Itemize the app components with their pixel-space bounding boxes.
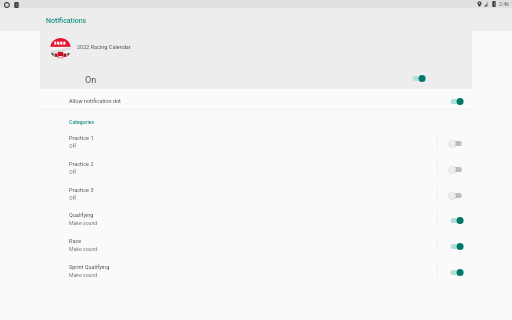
staticText: Notifications xyxy=(46,17,87,25)
button[interactable]: Allow notification dot xyxy=(40,92,472,110)
button[interactable]: Practice 3, off xyxy=(447,188,467,203)
button[interactable]: Practice 2 xyxy=(40,158,472,183)
staticText: Off xyxy=(69,169,77,175)
staticText: Practice 2 xyxy=(69,161,94,167)
other: Do not disturb xyxy=(4,2,10,8)
button[interactable]: Race xyxy=(40,235,472,260)
staticText: Allow notification dot xyxy=(69,98,121,104)
button[interactable]: Sprint Qualifying xyxy=(40,261,472,286)
staticText: Make sound xyxy=(69,246,98,252)
button[interactable]: Race, on xyxy=(447,239,467,254)
staticText: On xyxy=(85,75,97,86)
button[interactable]: Qualifying, on xyxy=(447,213,467,228)
staticText: 2:46 xyxy=(499,1,510,7)
other: Battery xyxy=(492,1,496,7)
staticText: Categories xyxy=(69,119,95,125)
staticText: Sprint Qualifying xyxy=(69,264,110,270)
staticText: Practice 3 xyxy=(69,187,94,193)
staticText: Race xyxy=(69,238,82,244)
staticText: Make sound xyxy=(69,220,98,226)
button[interactable]: 2022 Racing Calendar xyxy=(46,35,166,62)
staticText: Off xyxy=(69,143,77,149)
button[interactable]: Qualifying xyxy=(40,209,472,234)
other: Location xyxy=(477,1,482,7)
staticText: Off xyxy=(69,195,77,201)
button[interactable]: Practice 2, off xyxy=(447,162,467,177)
staticText: Make sound xyxy=(69,272,98,278)
button[interactable]: Practice 1 xyxy=(40,132,472,157)
staticText: Qualifying xyxy=(69,212,94,218)
button[interactable]: Practice 3 xyxy=(40,184,472,209)
other: Signal strength xyxy=(483,1,489,7)
other: Notification xyxy=(14,2,19,8)
button[interactable]: Show notifications, on xyxy=(409,71,429,86)
button[interactable]: Sprint Qualifying, on xyxy=(447,265,467,280)
staticText: Practice 1 xyxy=(69,135,94,141)
staticText: 2022 Racing Calendar xyxy=(77,44,131,50)
button[interactable]: Practice 1, off xyxy=(447,136,467,151)
